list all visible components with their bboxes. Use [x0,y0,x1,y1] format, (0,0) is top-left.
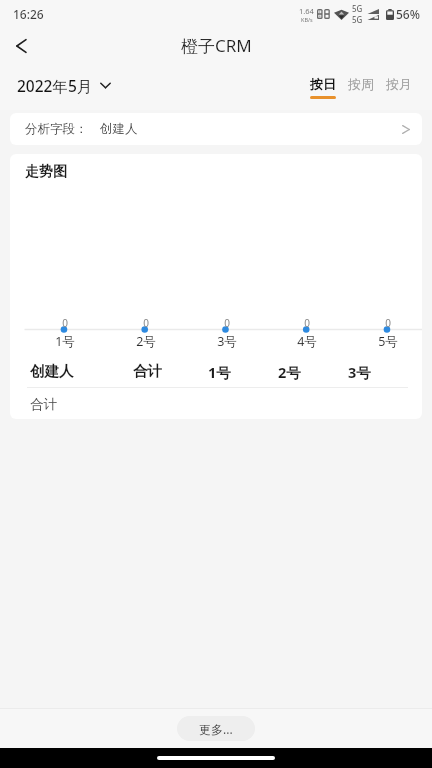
staticText: 5号 [378,333,398,350]
staticText: 合计 [133,362,208,380]
button[interactable]: Back [0,29,42,63]
staticText: 0 [224,316,230,330]
button[interactable]: 按日 [310,71,336,99]
staticText: 按周 [348,76,374,92]
staticText: 16:26 [13,6,44,22]
staticText: 合计 [30,396,57,413]
staticText: 按月 [386,76,412,92]
staticText: 2号 [278,362,348,380]
button[interactable]: 2022年5月 [17,75,111,96]
staticText: 0 [385,316,391,330]
staticText: 1.64 [299,6,314,16]
staticText: 1号 [208,362,278,380]
staticText: 0 [304,316,310,330]
staticText: 5G [352,14,363,25]
staticText: 2022年5月 [17,75,93,96]
staticText: 走势图 [25,163,67,181]
staticText: 创建人 [100,121,138,137]
staticText: 0 [143,316,149,330]
staticText: 按日 [310,76,336,92]
button[interactable]: 按周 [348,71,374,99]
staticText: 3号 [348,362,371,380]
staticText: 1号 [55,333,75,350]
staticText: 5G [352,3,363,14]
staticText: 56% [396,6,420,22]
button[interactable]: 更多... [177,716,255,741]
button[interactable]: 按月 [386,71,412,99]
staticText: 橙子CRM [181,34,252,57]
staticText: KB/s [301,16,313,23]
staticText: 3号 [217,333,237,350]
staticText: 2号 [136,333,156,350]
staticText: 0 [62,316,68,330]
button[interactable]: 分析字段： [10,113,422,145]
staticText: 分析字段： [25,121,88,137]
staticText: 更多... [199,721,233,737]
staticText: 创建人 [30,362,133,380]
staticText: 4号 [297,333,317,350]
